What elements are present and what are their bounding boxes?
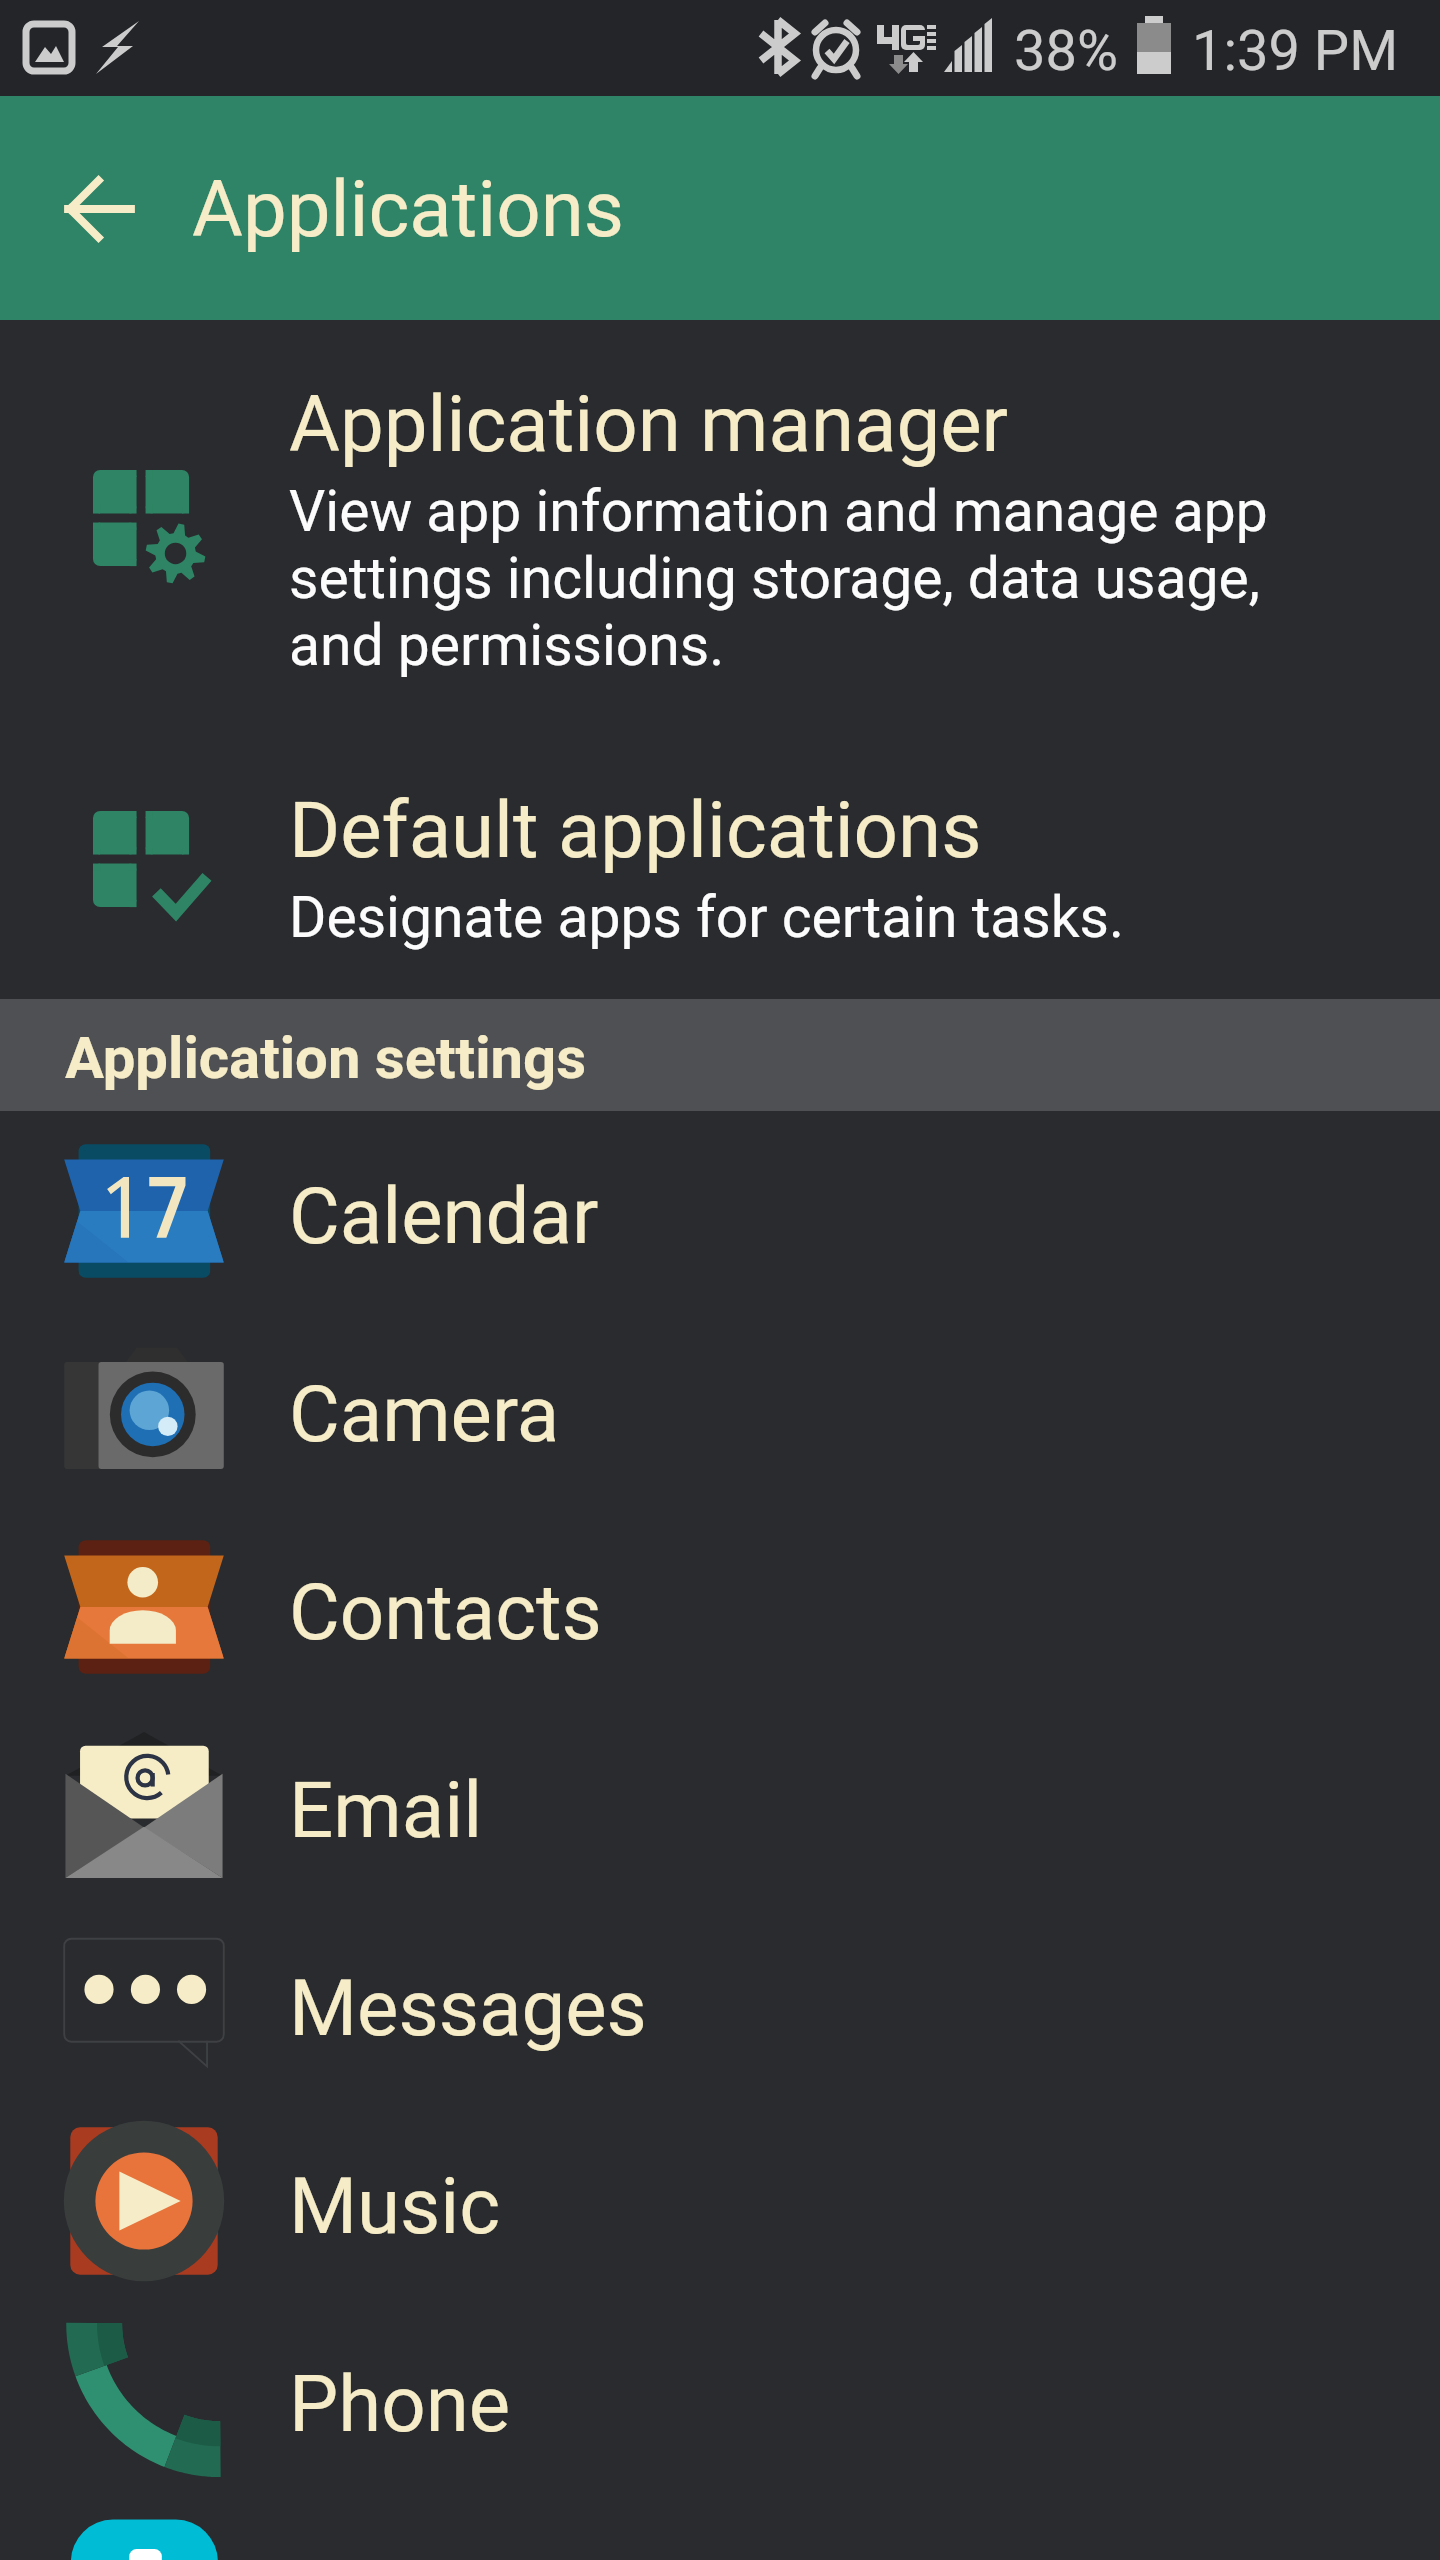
button[interactable] bbox=[0, 1706, 1440, 1904]
staticText: 38% bbox=[1014, 18, 1118, 84]
staticText: Calendar bbox=[289, 1171, 599, 1262]
button[interactable]: Back bbox=[35, 145, 163, 273]
button[interactable] bbox=[0, 1112, 1440, 1310]
staticText: Designate apps for certain tasks. bbox=[289, 884, 1125, 951]
staticText: View app information and manage app sett… bbox=[289, 478, 1329, 679]
staticText: 1:39 PM bbox=[1192, 18, 1399, 84]
staticText: Application settings bbox=[65, 1024, 587, 1092]
button[interactable] bbox=[0, 320, 1440, 720]
staticText: Application manager bbox=[289, 379, 1008, 470]
staticText: Camera bbox=[289, 1369, 560, 1460]
staticText: Contacts bbox=[289, 1567, 602, 1658]
staticText: Email bbox=[289, 1765, 483, 1856]
staticText: Applications bbox=[192, 164, 624, 255]
button[interactable] bbox=[0, 1310, 1440, 1508]
button[interactable] bbox=[0, 2102, 1440, 2300]
staticText: Messages bbox=[289, 1963, 647, 2054]
button[interactable] bbox=[0, 760, 1440, 999]
button[interactable] bbox=[0, 2300, 1440, 2498]
staticText: Music bbox=[289, 2161, 501, 2252]
button[interactable] bbox=[0, 1904, 1440, 2102]
button[interactable] bbox=[0, 2498, 1440, 2560]
staticText: Phone bbox=[289, 2359, 511, 2450]
staticText: Default applications bbox=[289, 785, 982, 876]
button[interactable] bbox=[0, 1508, 1440, 1706]
